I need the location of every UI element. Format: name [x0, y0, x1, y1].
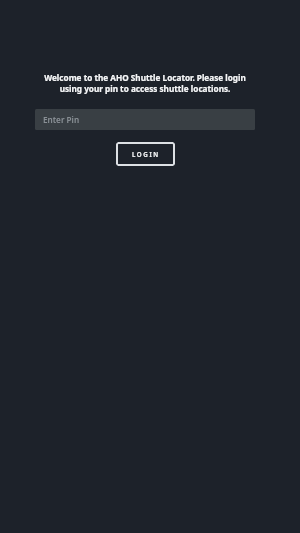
- button[interactable]: Enter Pin: [35, 109, 255, 130]
- staticText: LOGIN: [132, 150, 160, 158]
- staticText: Welcome to the AHO Shuttle Locator. Plea…: [35, 72, 255, 95]
- staticText: Enter Pin: [43, 114, 80, 125]
- button[interactable]: LOGIN: [116, 142, 175, 166]
